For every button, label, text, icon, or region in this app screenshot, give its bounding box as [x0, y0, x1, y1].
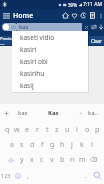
staticText: kasiri obi — [20, 57, 48, 66]
button[interactable]: Kas — [38, 104, 68, 122]
button[interactable]: j — [67, 137, 77, 152]
button[interactable]: More options — [97, 9, 104, 22]
button[interactable]: u — [62, 122, 72, 137]
button[interactable]: f — [37, 137, 47, 152]
button[interactable]: v — [47, 152, 57, 167]
button[interactable]: Search — [90, 167, 104, 184]
staticText: ka.. — [88, 109, 98, 117]
staticText: e — [25, 125, 29, 135]
button[interactable]: Swap languages — [2, 23, 18, 31]
staticText: i — [76, 125, 78, 135]
staticText: Home — [13, 11, 34, 21]
staticText: h — [60, 140, 65, 150]
button[interactable]: kasiri obi — [12, 55, 88, 67]
staticText: a — [10, 140, 14, 150]
staticText: . — [85, 171, 87, 181]
staticText: y — [20, 155, 24, 165]
button[interactable]: b — [57, 152, 67, 167]
staticText: 123 — [1, 172, 11, 179]
button[interactable]: Previous — [0, 36, 13, 45]
button[interactable]: x — [27, 152, 37, 167]
button[interactable]: kaseti vidio — [12, 31, 88, 43]
staticText: u — [65, 125, 70, 135]
staticText: kasirihu — [20, 69, 45, 78]
button[interactable]: ka.. — [81, 104, 104, 122]
staticText: Clear — [91, 38, 102, 44]
button[interactable]: o — [82, 122, 92, 137]
staticText: o — [85, 125, 90, 135]
button[interactable]: Emoji — [12, 167, 23, 184]
staticText: l — [91, 140, 93, 150]
button[interactable]: , — [23, 167, 32, 184]
staticText: w — [14, 125, 20, 135]
staticText: 7:11 AM — [83, 1, 102, 8]
staticText: x — [30, 155, 34, 165]
button[interactable]: Download — [97, 22, 104, 32]
staticText: q — [5, 125, 10, 135]
button[interactable]: Swap — [90, 22, 97, 32]
staticText: Kas — [48, 109, 59, 117]
button[interactable]: z — [52, 122, 62, 137]
button[interactable]: Shift — [4, 152, 17, 167]
button[interactable]: y — [17, 152, 27, 167]
staticText: j — [71, 140, 73, 150]
button[interactable]: c — [37, 152, 47, 167]
staticText: v — [50, 155, 54, 165]
staticText: f — [41, 140, 44, 150]
button[interactable]: Open navigation drawer — [0, 9, 13, 22]
staticText: k — [80, 140, 84, 150]
button[interactable]: p — [92, 122, 102, 137]
staticText: s — [20, 140, 24, 150]
button[interactable]: Add word — [0, 104, 12, 122]
button[interactable]: s — [17, 137, 27, 152]
staticText: m — [79, 155, 86, 165]
button[interactable]: 123 — [0, 167, 12, 184]
button[interactable]: t — [42, 122, 52, 137]
staticText: g — [50, 140, 55, 150]
staticText: kaseti vidio — [20, 33, 55, 42]
button[interactable]: kasij — [12, 79, 88, 91]
button[interactable]: Clear text — [82, 22, 90, 32]
button[interactable]: i — [72, 122, 82, 137]
staticText: 39% — [68, 2, 77, 8]
button[interactable]: q — [2, 122, 12, 137]
staticText: c — [40, 155, 44, 165]
button[interactable]: Home — [61, 9, 70, 22]
staticText: kas — [19, 23, 29, 31]
button[interactable]: w — [12, 122, 22, 137]
staticText: kasiri — [20, 45, 37, 54]
staticText: p — [95, 125, 100, 135]
staticText: t — [46, 125, 49, 135]
button[interactable]: Favourites — [70, 9, 79, 22]
button[interactable]: Clear — [89, 36, 104, 45]
button[interactable]: a — [7, 137, 17, 152]
staticText: n — [70, 155, 75, 165]
staticText: kas — [18, 109, 28, 117]
staticText: kasij — [20, 81, 34, 90]
button[interactable]: kasiri — [12, 43, 88, 55]
staticText: r — [36, 125, 39, 135]
button[interactable]: kas — [12, 104, 33, 122]
button[interactable]: k — [77, 137, 87, 152]
button[interactable]: l — [87, 137, 97, 152]
button[interactable]: m — [77, 152, 87, 167]
button[interactable]: n — [67, 152, 77, 167]
button[interactable]: d — [27, 137, 37, 152]
button[interactable]: History — [79, 9, 88, 22]
staticText: Previous — [0, 36, 13, 45]
staticText: d — [30, 140, 35, 150]
button[interactable]: h — [57, 137, 67, 152]
button[interactable]: kasirihu — [12, 67, 88, 79]
staticText: , — [27, 171, 29, 181]
button[interactable]: r — [32, 122, 42, 137]
staticText: b — [60, 155, 65, 165]
staticText: z — [55, 125, 59, 135]
button[interactable]: Backspace — [87, 152, 100, 167]
button[interactable]: . — [81, 167, 90, 184]
button[interactable]: e — [22, 122, 32, 137]
button[interactable]: Dictionary — [88, 9, 97, 22]
button[interactable]: g — [47, 137, 57, 152]
